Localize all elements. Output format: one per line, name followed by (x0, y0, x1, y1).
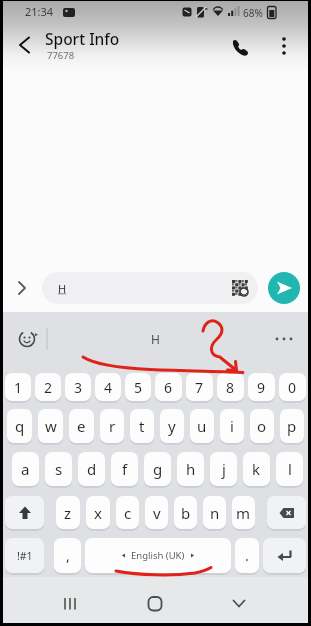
button[interactable]: x (86, 496, 110, 529)
button[interactable]: 9 (248, 373, 275, 401)
button[interactable]: !#1 (5, 538, 44, 573)
staticText: b (181, 503, 191, 523)
button[interactable] (5, 496, 44, 529)
button[interactable]: m (232, 496, 255, 529)
button[interactable]: t (130, 409, 154, 443)
staticText: l (288, 459, 292, 479)
button[interactable] (228, 36, 252, 58)
staticText: p (287, 416, 297, 436)
staticText: 6 (164, 378, 173, 397)
staticText: 8 (226, 378, 235, 397)
staticText: H (151, 331, 160, 347)
button[interactable]: f (111, 452, 138, 486)
staticText: 0 (288, 378, 297, 397)
button[interactable]: p (280, 409, 304, 443)
button[interactable]: . (235, 538, 259, 573)
staticText: v (153, 503, 161, 523)
button[interactable]: 5 (125, 373, 151, 401)
staticText: u (197, 416, 207, 436)
button[interactable]: z (56, 496, 80, 529)
staticText: h (186, 459, 196, 479)
button[interactable]: 6 (155, 373, 182, 401)
button[interactable]: 0 (279, 373, 306, 401)
button[interactable]: 4 (95, 373, 121, 401)
button[interactable]: c (116, 496, 139, 529)
button[interactable]: H (42, 272, 258, 304)
staticText: 3 (74, 378, 83, 397)
button[interactable] (12, 34, 38, 58)
button[interactable] (54, 591, 86, 617)
staticText: H (58, 281, 67, 296)
staticText: n (210, 503, 220, 523)
button[interactable] (268, 272, 300, 304)
button[interactable]: , (54, 538, 81, 573)
staticText: 9 (257, 378, 266, 397)
button[interactable]: 3 (65, 373, 91, 401)
staticText: o (257, 416, 267, 436)
staticText: x (94, 503, 102, 523)
staticText: t (139, 416, 145, 436)
staticText: 4 (104, 378, 113, 397)
button[interactable]: 8 (217, 373, 244, 401)
button[interactable]: q (7, 409, 32, 443)
staticText: c (124, 503, 132, 523)
staticText: , (66, 546, 70, 565)
staticText: d (87, 459, 97, 479)
button[interactable]: English (UK) (85, 538, 231, 573)
button[interactable]: 1 (5, 373, 31, 401)
button[interactable]: o (250, 409, 274, 443)
button[interactable] (139, 591, 171, 617)
button[interactable] (274, 34, 294, 60)
button[interactable]: k (243, 452, 270, 486)
staticText: 7 (195, 378, 204, 397)
button[interactable]: d (78, 452, 105, 486)
button[interactable] (223, 591, 255, 617)
staticText: 2 (44, 378, 53, 397)
staticText: a (21, 459, 30, 479)
staticText: z (64, 503, 72, 523)
button[interactable] (263, 538, 306, 573)
staticText: 21:34 (25, 4, 54, 19)
button[interactable]: e (69, 409, 94, 443)
staticText: g (153, 459, 163, 479)
button[interactable] (268, 326, 300, 352)
button[interactable]: b (174, 496, 197, 529)
staticText: 1 (14, 378, 23, 397)
staticText: 77678 (47, 49, 75, 62)
staticText: !#1 (17, 549, 33, 563)
button[interactable]: i (220, 409, 244, 443)
button[interactable]: 2 (35, 373, 61, 401)
button[interactable]: r (100, 409, 124, 443)
staticText: m (236, 503, 251, 523)
staticText: s (55, 459, 63, 479)
button[interactable] (14, 280, 32, 296)
staticText: j (222, 459, 226, 479)
staticText: 68% (243, 6, 263, 20)
staticText: k (252, 459, 261, 479)
button[interactable]: j (210, 452, 237, 486)
button[interactable]: w (38, 409, 63, 443)
button[interactable]: u (190, 409, 214, 443)
button[interactable]: g (144, 452, 171, 486)
button[interactable]: s (45, 452, 72, 486)
button[interactable]: v (145, 496, 168, 529)
staticText: q (15, 416, 25, 436)
button[interactable]: 7 (186, 373, 213, 401)
button[interactable]: n (203, 496, 226, 529)
button[interactable]: a (12, 452, 39, 486)
staticText: Sport Info (45, 28, 120, 49)
staticText: r (109, 416, 116, 436)
staticText: e (77, 416, 86, 436)
staticText: y (168, 416, 176, 436)
button[interactable]: l (276, 452, 303, 486)
button[interactable]: y (160, 409, 184, 443)
staticText: English (UK) (131, 549, 185, 562)
staticText: . (245, 546, 249, 565)
staticText: 5 (134, 378, 143, 397)
button[interactable]: H (120, 326, 190, 352)
button[interactable] (267, 496, 306, 529)
button[interactable]: h (177, 452, 204, 486)
staticText: w (45, 416, 57, 436)
button[interactable] (10, 324, 44, 354)
staticText: i (230, 416, 234, 436)
